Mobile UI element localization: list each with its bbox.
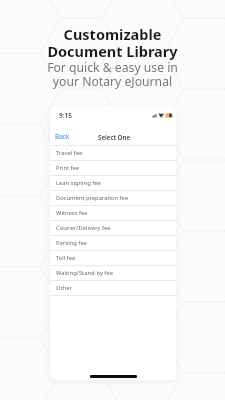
- button[interactable]: Print fee: [50, 161, 176, 176]
- button[interactable]: Lean signing fee: [50, 176, 176, 191]
- staticText: Document preparation fee: [56, 194, 129, 202]
- button[interactable]: Document preparation fee: [50, 191, 176, 206]
- staticText: Parking fee: [56, 239, 87, 247]
- button[interactable]: Waiting/Stand-by fee: [50, 266, 176, 281]
- button[interactable]: Other: [50, 281, 176, 296]
- staticText: Waiting/Stand-by fee: [56, 269, 113, 277]
- staticText: Travel fee: [56, 149, 83, 157]
- button[interactable]: Parking fee: [50, 236, 176, 251]
- staticText: Toll fee: [56, 254, 76, 262]
- button[interactable]: Witness fee: [50, 206, 176, 221]
- staticText: Witness fee: [56, 209, 88, 217]
- staticText: Other: [56, 284, 72, 292]
- staticText: Back: [55, 132, 70, 141]
- button[interactable]: Back: [50, 128, 75, 142]
- staticText: Customizable Document Library: [0, 24, 225, 61]
- staticText: Courier/Delivery fee: [56, 224, 111, 232]
- staticText: Lean signing fee: [56, 179, 101, 187]
- staticText: For quick & easy use in your Notary eJou…: [0, 59, 225, 90]
- staticText: Print fee: [56, 164, 80, 172]
- button[interactable]: Courier/Delivery fee: [50, 221, 176, 236]
- staticText: Select One: [98, 133, 131, 141]
- button[interactable]: Travel fee: [50, 146, 176, 161]
- staticText: 9:15: [59, 111, 72, 120]
- button[interactable]: Toll fee: [50, 251, 176, 266]
